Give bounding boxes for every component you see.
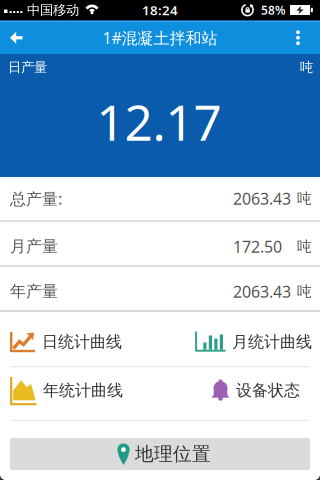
staticText: 年统计曲线	[43, 381, 123, 400]
staticText: 地理位置	[135, 442, 211, 465]
staticText: 吨	[297, 237, 312, 255]
staticText: 中国移动	[27, 2, 79, 18]
button[interactable]: 设备状态	[211, 379, 300, 402]
staticText: 172.50	[233, 236, 282, 257]
button[interactable]: 年统计曲线	[10, 376, 123, 405]
staticText: 日产量	[8, 59, 47, 75]
staticText: 日统计曲线	[42, 332, 122, 352]
staticText: 月产量	[10, 237, 58, 256]
staticText: 月统计曲线	[232, 332, 312, 352]
staticText: 1#混凝土拌和站	[102, 27, 217, 48]
staticText: 年产量	[10, 282, 58, 301]
staticText: 2063.43	[233, 188, 291, 209]
button[interactable]: 地理位置	[10, 438, 310, 470]
staticText: 吨	[300, 59, 313, 75]
staticText: 吨	[297, 189, 312, 207]
staticText: 58%	[261, 2, 286, 18]
button[interactable]: 月统计曲线	[195, 331, 312, 352]
button[interactable]: Back	[0, 21, 22, 55]
button[interactable]: 日统计曲线	[10, 331, 122, 353]
button[interactable]: Menu	[296, 21, 320, 54]
staticText: 12.17	[96, 89, 221, 154]
staticText: 18:24	[142, 1, 178, 19]
staticText: 吨	[297, 282, 312, 300]
staticText: 2063.43	[233, 281, 291, 302]
staticText: 设备状态	[236, 381, 300, 400]
staticText: 总产量:	[10, 188, 62, 209]
